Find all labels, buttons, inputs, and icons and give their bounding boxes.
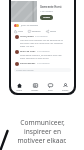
staticText: Home: [16, 89, 22, 92]
button[interactable]: Volgen: [40, 15, 53, 20]
staticText: Chat: [48, 89, 53, 92]
staticText: Schrijf een reactie: [16, 69, 34, 72]
staticText: Communiceer,: [20, 118, 65, 127]
staticText: 2 uur geleden: [35, 35, 48, 38]
button[interactable]: Schrijf een reactie: [14, 68, 71, 72]
staticText: Volgen: [43, 16, 51, 19]
staticText: Profiel: [62, 89, 69, 92]
button[interactable]: Profiel: [62, 83, 69, 92]
staticText: Gemeente Horst: [40, 5, 62, 9]
staticText: Leuk: [18, 30, 23, 33]
staticText: Jij en 32 anderen: [21, 24, 39, 27]
staticText: inspireer en: [24, 127, 61, 136]
button[interactable]: Nieuws: [31, 83, 39, 92]
staticText: Wat een mooi initiatief van de gemeente!…: [20, 39, 63, 48]
button[interactable]: Chat: [48, 83, 53, 92]
staticText: Anne Jansen: [20, 35, 34, 38]
staticText: Mark de Vries: [20, 50, 36, 53]
staticText: 1.204 volgers: [40, 10, 54, 13]
staticText: Delen: [50, 30, 56, 33]
staticText: 2 uur geleden: [37, 50, 50, 53]
button[interactable]: Delen: [46, 30, 56, 33]
staticText: motiveer elkaar.: [17, 136, 67, 145]
staticText: Nieuws: [31, 89, 39, 92]
button[interactable]: Leuk: [14, 30, 23, 33]
staticText: Goed bezig allemaal, dit verdient echt v…: [20, 54, 63, 60]
button[interactable]: Reageer: [28, 30, 41, 33]
staticText: Reageer: [32, 30, 41, 33]
button[interactable]: Home: [16, 83, 22, 92]
staticText: 2 uur geleden: [37, 62, 50, 65]
staticText: Sanne Bakker: [20, 62, 36, 65]
